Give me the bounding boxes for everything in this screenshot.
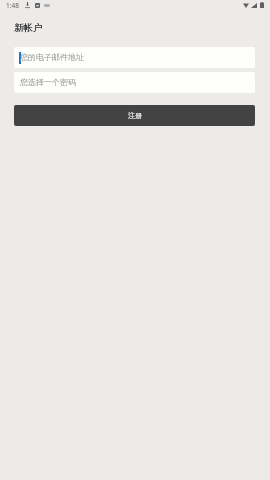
staticText: 1:48 (6, 1, 19, 10)
staticText: 新帐户 (14, 22, 43, 34)
staticText: 您的电子邮件地址 (20, 52, 84, 62)
staticText: 注册 (128, 111, 142, 120)
button[interactable]: 注册 (14, 105, 255, 126)
button[interactable]: 您的电子邮件地址 (14, 47, 255, 68)
staticText: 您选择一个密码 (20, 77, 76, 87)
other: Wi-Fi (243, 3, 249, 8)
other: Downloading (25, 2, 30, 8)
button[interactable]: 您选择一个密码 (14, 72, 255, 93)
other: SD card (35, 3, 40, 8)
other: Battery (260, 2, 264, 8)
other: Mobile signal (251, 3, 257, 8)
staticText: 新帐户 (14, 22, 43, 34)
